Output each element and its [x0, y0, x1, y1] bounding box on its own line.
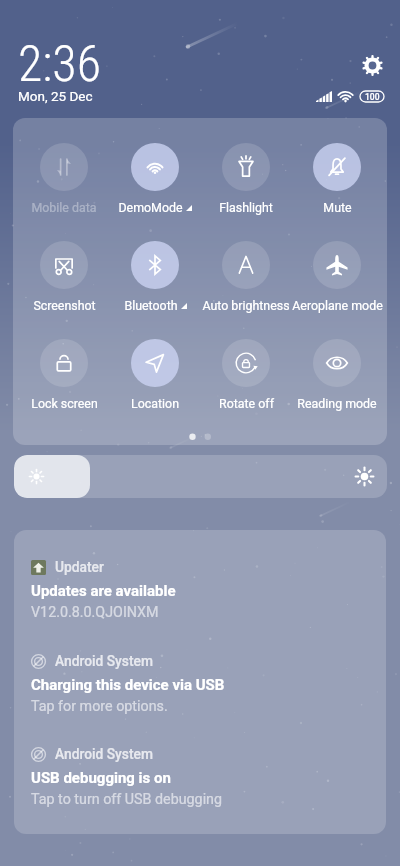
button[interactable]: Mute [289, 143, 385, 215]
staticText: Lock screen [31, 396, 98, 411]
button[interactable]: Aeroplane mode [289, 241, 385, 313]
staticText: Tap for more options. [31, 698, 168, 715]
staticText: Android System [55, 653, 153, 669]
button[interactable]: Reading mode [289, 339, 385, 411]
button[interactable]: Android System [14, 746, 386, 808]
staticText: Bluetooth [124, 298, 178, 313]
staticText: Mon, 25 Dec [18, 88, 93, 104]
staticText: Updater [55, 559, 104, 575]
button[interactable]: Screenshot [16, 241, 112, 313]
staticText: Aeroplane mode [292, 298, 383, 313]
button[interactable]: Flashlight [198, 143, 294, 215]
button[interactable]: Auto brightness [198, 241, 294, 313]
button[interactable]: Mobile data [16, 143, 112, 215]
staticText: Updates are available [31, 582, 176, 600]
staticText: Rotate off [219, 396, 274, 411]
staticText: Flashlight [219, 200, 273, 215]
staticText: Screenshot [33, 298, 96, 313]
button[interactable]: Android System [14, 653, 386, 715]
button[interactable]: Settings [359, 52, 386, 79]
staticText: 2:36 [18, 35, 101, 94]
staticText: V12.0.8.0.QJOINXM [31, 604, 159, 621]
button[interactable]: Lock screen [16, 339, 112, 411]
staticText: Mobile data [31, 200, 97, 215]
staticText: DemoMode [118, 200, 183, 215]
staticText: Location [131, 396, 179, 411]
staticText: Android System [55, 746, 153, 762]
staticText: 100 [365, 92, 380, 102]
button[interactable]: Brightness [14, 455, 387, 498]
staticText: Auto brightness [202, 298, 290, 313]
staticText: Charging this device via USB [31, 676, 225, 694]
button[interactable]: DemoMode [107, 143, 203, 215]
button[interactable]: Updater [14, 559, 386, 621]
staticText: Reading mode [297, 396, 377, 411]
staticText: Mute [323, 200, 352, 215]
button[interactable]: Rotate off [198, 339, 294, 411]
button[interactable]: Bluetooth [107, 241, 203, 313]
staticText: USB debugging is on [31, 769, 171, 787]
staticText: Tap to turn off USB debugging [31, 791, 223, 808]
button[interactable]: Location [107, 339, 203, 411]
